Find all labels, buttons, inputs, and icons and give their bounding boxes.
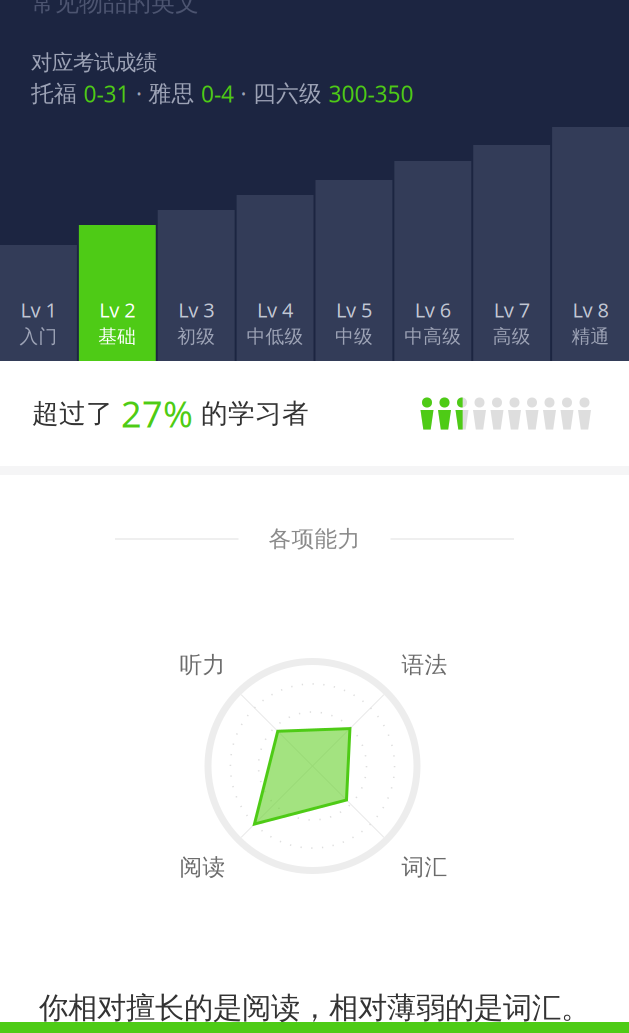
button[interactable]: Lv 5 bbox=[315, 0, 392, 361]
staticText: 中低级 bbox=[247, 325, 304, 348]
button[interactable]: Lv 8 bbox=[552, 0, 629, 361]
staticText: 阅读 bbox=[179, 853, 225, 881]
staticText: 托福 bbox=[31, 80, 77, 108]
staticText: 中级 bbox=[335, 325, 373, 348]
staticText: 雅思 bbox=[148, 80, 194, 108]
staticText: 中高级 bbox=[404, 325, 461, 348]
staticText: 词汇 bbox=[401, 853, 447, 881]
staticText: 27% bbox=[121, 390, 193, 437]
staticText: 高级 bbox=[493, 325, 531, 348]
button[interactable]: Lv 3 bbox=[158, 0, 235, 361]
staticText: Lv 2 bbox=[99, 296, 135, 323]
staticText: 你相对擅长的是阅读，相对薄弱的是词汇。 bbox=[39, 990, 590, 1026]
staticText: Lv 4 bbox=[257, 296, 293, 323]
staticText: 初级 bbox=[177, 325, 215, 348]
staticText: Lv 5 bbox=[336, 296, 372, 323]
button[interactable]: Lv 4 bbox=[237, 0, 313, 361]
staticText: 超过了 bbox=[32, 397, 121, 430]
button[interactable]: Lv 1 bbox=[0, 0, 77, 361]
staticText: 的学习者 bbox=[193, 397, 309, 430]
staticText: 听力 bbox=[179, 651, 225, 679]
staticText: 0-4 bbox=[201, 79, 234, 109]
staticText: 基础 bbox=[98, 325, 136, 348]
staticText: 四六级 bbox=[253, 80, 322, 108]
staticText: 各项能力 bbox=[268, 525, 360, 553]
staticText: Lv 1 bbox=[20, 296, 56, 323]
staticText: Lv 3 bbox=[178, 296, 214, 323]
staticText: · bbox=[240, 79, 246, 109]
staticText: 常见物品的英文 bbox=[31, 0, 199, 17]
staticText: · bbox=[136, 79, 142, 109]
staticText: 0-31 bbox=[83, 79, 129, 109]
button[interactable]: Lv 7 bbox=[473, 0, 550, 361]
button[interactable]: Lv 2 bbox=[79, 0, 156, 361]
staticText: 精通 bbox=[572, 325, 610, 348]
button[interactable]: Lv 6 bbox=[394, 0, 471, 361]
staticText: 对应考试成绩 bbox=[31, 49, 157, 76]
staticText: Lv 6 bbox=[415, 296, 451, 323]
staticText: 300-350 bbox=[328, 79, 413, 109]
staticText: 入门 bbox=[19, 325, 57, 348]
staticText: 语法 bbox=[401, 651, 447, 679]
staticText: Lv 7 bbox=[494, 296, 530, 323]
staticText: Lv 8 bbox=[573, 296, 609, 323]
